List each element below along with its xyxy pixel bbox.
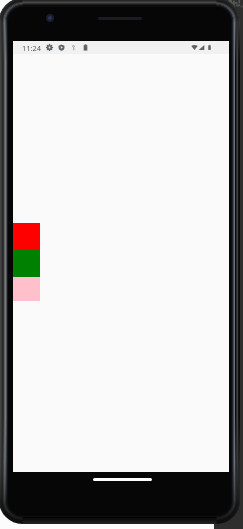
staticText: 11:24 bbox=[22, 43, 41, 53]
